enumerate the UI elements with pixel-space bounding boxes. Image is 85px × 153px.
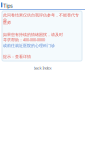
button[interactable]: back Index <box>0 65 85 71</box>
staticText: 寻求帮助：400-000-0000 <box>3 37 45 42</box>
staticText: back Index <box>33 65 51 71</box>
staticText: 此问卷结果仅供自我评估参考，不能替代专业 <box>3 13 79 23</box>
staticText: 如果您有持续的情绪困扰，请及时 <box>3 32 63 37</box>
staticText: Tips <box>3 2 13 9</box>
staticText: 或前往就近医院的心理科门诊 <box>3 43 55 48</box>
staticText: 提示：查看详情 <box>3 54 31 59</box>
staticText: 医师 <box>3 20 11 25</box>
